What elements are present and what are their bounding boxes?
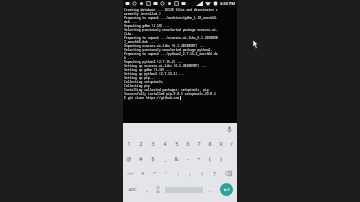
staticText: ' [165,170,167,178]
button[interactable]: ; [184,166,196,181]
staticText: ? [213,170,216,178]
staticText: Setting up gdbm (1.18) ... [124,68,172,72]
staticText: . [209,186,211,194]
button[interactable]: ! [196,166,208,181]
button[interactable]: , [141,181,152,198]
staticText: 4 [163,140,167,148]
staticText: / [230,140,233,148]
button[interactable]: 4 [159,136,171,151]
staticText: Setting up ncurses-ui-libs (6.1.20180907… [124,64,207,68]
staticText: 8 [208,140,212,148]
staticText: 12 [156,186,160,190]
button[interactable]: 1 [123,136,135,151]
staticText: 2 [139,140,143,148]
button[interactable]: =\< [123,166,137,181]
staticText: Preparing to unpack .../ncurses-ui-libs_… [124,36,218,40]
staticText: ) [220,155,222,163]
staticText: , [146,186,148,194]
staticText: Setting up python2 (2.7.15-2) ... [124,72,185,76]
staticText: ; [189,170,191,178]
button[interactable]: # [135,151,147,166]
staticText: deb ... [124,20,137,24]
staticText: 3 [151,140,155,148]
button[interactable]: 2 [135,136,147,151]
staticText: # [139,155,143,163]
staticText: 7 [197,140,201,148]
staticText: ( [209,155,211,163]
staticText: ! [201,170,203,178]
button[interactable]: + [193,151,204,166]
staticText: Selecting previously unselected package … [124,48,213,52]
staticText: 5 [175,140,179,148]
button[interactable]: * [137,166,148,181]
staticText: urrently installed.) [124,12,161,16]
staticText: Collecting setuptools [124,80,163,84]
staticText: 9 [219,140,223,148]
staticText: * [141,170,145,178]
staticText: 7_aarch64.deb ... [124,40,156,44]
button[interactable]: Backspace [220,166,237,181]
button[interactable]: ABC [123,181,141,198]
button[interactable]: 6 [182,136,193,151]
staticText: & [174,155,179,163]
staticText: : [177,170,179,178]
button[interactable]: Enter [215,181,237,198]
staticText: Collecting pip [124,84,150,88]
staticText: $ git clone https://github.com [124,96,180,100]
button[interactable]: " [148,166,160,181]
button[interactable]: 3 [147,136,159,151]
button[interactable]: ( [204,151,215,166]
staticText: Selecting previously unselected package … [124,28,218,32]
staticText: Successfully installed pip-9.0.1 setupto… [124,92,216,96]
button[interactable]: Switch symbols [152,181,164,198]
staticText: b ... [124,56,134,60]
staticText: Unpacking gdbm (1.18) ... [124,24,170,28]
button[interactable]: / [226,136,237,151]
staticText: @ [126,155,132,163]
button[interactable]: ? [208,166,220,181]
staticText: 1 [127,140,131,148]
staticText: Installing collected packages: setuptool… [124,88,209,92]
button[interactable]: 8 [204,136,215,151]
button[interactable]: $ [147,151,159,166]
staticText: _ [164,155,167,163]
staticText: Unpacking ncurses-ui-libs (6.1.20180907)… [124,44,205,48]
button[interactable]: 5 [171,136,182,151]
staticText: " [153,170,156,178]
staticText: Creating database ... 16128 files and di… [124,8,218,12]
staticText: + [197,155,201,163]
button[interactable]: Voice input [225,125,234,134]
staticText: 34 [156,190,160,194]
button[interactable]: 9 [215,136,226,151]
staticText: Preparing to unpack .../python2_2.7.15-2… [124,52,218,56]
button[interactable]: - [182,151,193,166]
staticText: Setting up pip... [124,76,156,80]
button[interactable]: Creating database ... 16128 files and di… [123,7,237,123]
staticText: - [187,155,189,163]
button[interactable]: : [172,166,184,181]
button[interactable]: ) [215,151,226,166]
button[interactable]: & [171,151,182,166]
button[interactable]: 7 [193,136,204,151]
staticText: $ [151,155,155,163]
staticText: Unpacking python2 (2.7.15-2) ... [124,60,183,64]
staticText: =\< [127,171,134,177]
button[interactable]: _ [159,151,171,166]
staticText: 3:30 PM [220,1,236,6]
button[interactable]: @ [123,151,135,166]
staticText: libs. [124,32,134,36]
staticText: Preparing to unpack .../archives/gdbm_1.… [124,16,218,20]
staticText: ABC [128,187,137,193]
button[interactable]: ' [160,166,172,181]
staticText: 6 [186,140,190,148]
